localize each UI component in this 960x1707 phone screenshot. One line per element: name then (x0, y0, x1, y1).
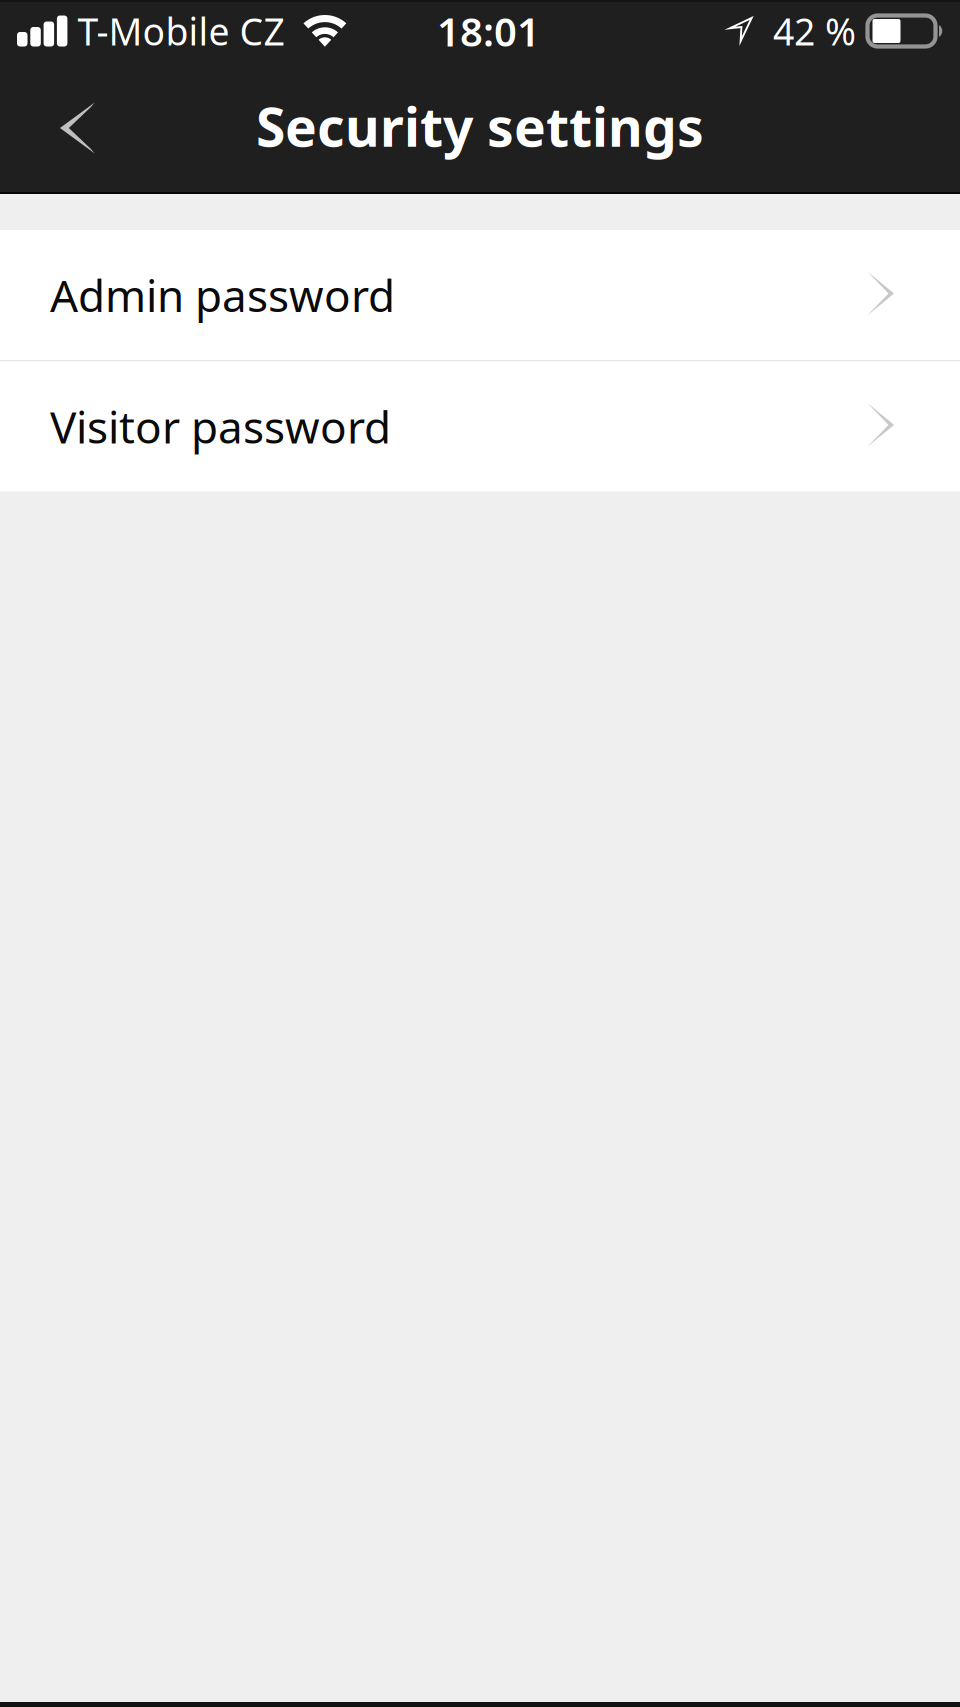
staticText: Visitor password (50, 397, 391, 456)
button[interactable]: Back (0, 72, 152, 192)
staticText: Security settings (256, 91, 704, 161)
button[interactable]: Admin password (0, 230, 960, 360)
staticText: 42 % (773, 6, 856, 56)
staticText: Admin password (50, 266, 395, 324)
staticText: T-Mobile CZ (77, 6, 284, 56)
staticText: 18:01 (437, 4, 540, 57)
button[interactable]: Visitor password (0, 361, 960, 491)
